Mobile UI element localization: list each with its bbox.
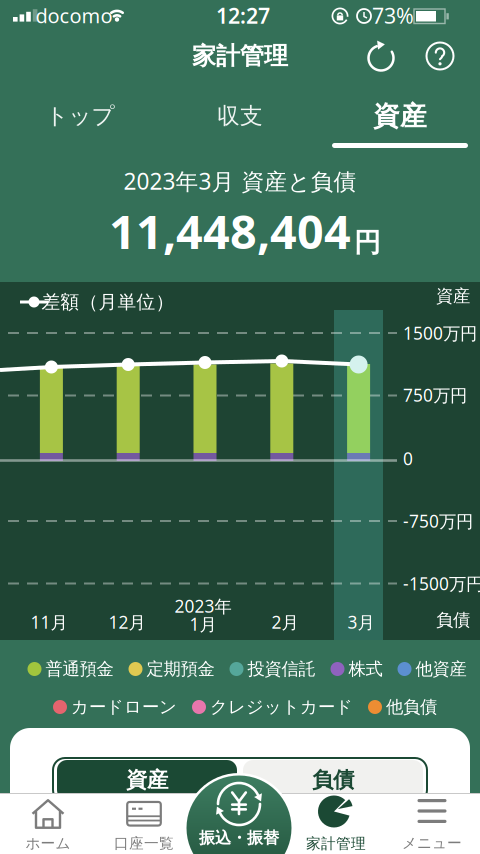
staticText: 資産 [436,285,470,307]
staticText: 収支 [217,102,263,130]
staticText: メニュー [402,834,462,852]
staticText: 11月 [30,610,67,633]
button[interactable]: ヘルプ [418,34,462,78]
staticText: 定期預金 [146,658,214,680]
staticText: 1月 [189,612,216,635]
staticText: 資産 [126,767,168,793]
button[interactable]: 負債 [243,760,423,800]
staticText: 12月 [108,610,145,633]
staticText: 家計管理 [306,834,366,852]
staticText: 家計管理 [192,41,288,71]
button[interactable]: 家計管理 [290,794,382,852]
staticText: ホーム [25,834,70,852]
staticText: 振込・振替 [199,828,279,848]
staticText: 円 [354,226,381,259]
staticText: 負債 [312,767,354,793]
button[interactable]: 資産 [57,760,237,800]
staticText: 口座一覧 [114,834,174,852]
button[interactable]: 収支 [160,94,320,138]
staticText: 資産 [373,100,427,132]
staticText: 株式 [348,658,382,680]
staticText: 投資信託 [247,658,315,680]
staticText: 12:27 [216,1,270,30]
staticText: 73% [372,1,414,30]
staticText: 普通預金 [45,658,113,680]
staticText: 2023年 [174,594,231,617]
staticText: docomo [35,2,112,29]
staticText: トップ [45,102,114,130]
staticText: 750万円 [403,383,467,406]
button[interactable]: ホーム [2,799,94,851]
button[interactable]: メニュー [386,799,478,851]
staticText: 負債 [436,609,470,631]
staticText: 3月 [347,610,374,633]
staticText: 0 [403,447,413,470]
staticText: 他資産 [415,658,466,680]
button[interactable]: 更新 [359,34,403,78]
button[interactable]: トップ [0,94,160,138]
staticText: クレジットカード [210,696,353,718]
staticText: 2023年3月 資産と負債 [123,166,356,196]
staticText: -750万円 [403,509,473,532]
button[interactable]: 資産 [320,94,480,138]
button[interactable]: 振込・振替 [184,773,294,854]
staticText: -1500万円 [403,572,480,595]
staticText: 差額（月単位） [41,290,174,313]
staticText: 11,448,404 [109,200,351,262]
staticText: 他負債 [386,696,437,718]
staticText: カードローン [71,696,177,718]
staticText: 1500万円 [403,321,477,344]
button[interactable]: 口座一覧 [98,800,190,852]
staticText: 2月 [271,610,298,633]
